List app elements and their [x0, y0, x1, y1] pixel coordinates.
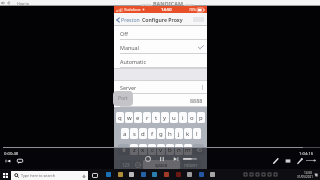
staticText: o	[190, 114, 194, 122]
button[interactable]: Tray icon	[272, 169, 278, 180]
button[interactable]: q	[116, 112, 124, 123]
button[interactable]: How to	[17, 0, 316, 6]
button[interactable]: v	[157, 144, 165, 155]
button[interactable]: Shift	[118, 144, 129, 155]
button[interactable]: Next	[172, 155, 180, 163]
button[interactable]: Reload	[7, 1, 11, 5]
button[interactable]: Switch language	[133, 160, 142, 169]
button[interactable]: Mail	[137, 169, 149, 180]
button[interactable]: n	[175, 144, 183, 155]
button[interactable]: Automatic	[114, 54, 207, 68]
button[interactable]: Tray icon	[248, 169, 254, 180]
staticText: w	[127, 114, 132, 122]
button[interactable]: Tray icon	[266, 169, 272, 180]
button[interactable]: Pause	[158, 155, 166, 163]
button[interactable]: File Explorer	[114, 169, 126, 180]
staticText: Configure Proxy	[142, 16, 183, 23]
staticText: i	[182, 114, 184, 122]
staticText: y	[163, 114, 167, 122]
button[interactable]: b	[166, 144, 174, 155]
button[interactable]: return	[181, 160, 201, 169]
button[interactable]: d	[139, 128, 147, 139]
staticText: Type here to search	[21, 173, 55, 178]
button[interactable]: space	[143, 160, 180, 169]
button[interactable]: Preston	[114, 16, 140, 23]
button[interactable]: Tray icon	[260, 169, 266, 180]
staticText: Automatic	[120, 58, 146, 65]
button[interactable]: Acrobat	[160, 169, 172, 180]
staticText: 0:00:48	[4, 151, 19, 157]
staticText: b	[168, 146, 172, 154]
button[interactable]: App	[172, 169, 184, 180]
button[interactable]: y	[161, 112, 169, 123]
button[interactable]: Notes	[284, 157, 291, 164]
button[interactable]: Microsoft Store	[125, 169, 137, 180]
staticText: p	[199, 114, 203, 122]
button[interactable]: z	[130, 144, 138, 155]
button[interactable]: Microsoft Edge	[102, 169, 114, 180]
button[interactable]: Port	[114, 94, 207, 107]
staticText: j	[178, 130, 180, 138]
staticText: k	[186, 130, 190, 138]
button[interactable]: Skype	[148, 169, 160, 180]
button[interactable]: o	[188, 112, 196, 123]
button[interactable]: e	[134, 112, 142, 123]
button[interactable]: Server	[114, 81, 207, 94]
button[interactable]: a	[121, 128, 129, 139]
button[interactable]: w	[125, 112, 133, 123]
button[interactable]: Tray icon	[242, 169, 248, 180]
staticText: 123	[122, 162, 130, 168]
button[interactable]: Draw	[272, 157, 279, 164]
staticText: Port	[120, 97, 131, 104]
staticText: h	[168, 130, 172, 138]
button[interactable]: s	[130, 128, 138, 139]
button[interactable]: Back	[1, 1, 5, 5]
button[interactable]: Loop	[144, 155, 152, 163]
button[interactable]: x	[139, 144, 147, 155]
button[interactable]: t	[152, 112, 160, 123]
button[interactable]: f	[148, 128, 156, 139]
button[interactable]: i	[179, 112, 187, 123]
button[interactable]: Off	[114, 26, 207, 40]
button[interactable]: Tray icon	[254, 169, 260, 180]
staticText: 14:50	[161, 7, 172, 13]
button[interactable]: App	[195, 169, 207, 180]
staticText: 14:50	[304, 171, 313, 175]
button[interactable]: r	[143, 112, 151, 123]
button[interactable]: Notifications	[313, 172, 319, 178]
staticText: Vodafone	[124, 7, 141, 12]
button[interactable]: c	[148, 144, 156, 155]
button[interactable]: g	[157, 128, 165, 139]
staticText: Port	[118, 95, 128, 102]
staticText: www.	[141, 2, 153, 7]
staticText: x	[141, 146, 145, 154]
button[interactable]: Manual	[114, 40, 207, 54]
button[interactable]: 123	[120, 160, 132, 169]
staticText: s	[133, 130, 136, 138]
staticText: z	[133, 146, 136, 154]
button[interactable]: Settings	[296, 157, 303, 164]
button[interactable]: m	[184, 144, 192, 155]
staticText: .com	[184, 2, 194, 7]
button[interactable]: Task view	[90, 170, 99, 180]
staticText: 1:04:16	[299, 151, 314, 157]
button[interactable]: Volume	[181, 155, 199, 163]
staticText: r	[146, 114, 149, 122]
button[interactable]: App	[183, 169, 195, 180]
button[interactable]: Volume	[306, 157, 316, 164]
button[interactable]: Previous	[4, 157, 11, 164]
button[interactable]: Type here to search	[11, 171, 88, 180]
staticText: v	[159, 146, 163, 154]
button[interactable]: p	[197, 112, 205, 123]
button[interactable]: Start	[1, 170, 10, 180]
button[interactable]: App	[206, 169, 218, 180]
button[interactable]: j	[175, 128, 183, 139]
button[interactable]: Backspace	[193, 144, 204, 155]
button[interactable]: Subtitles	[16, 157, 23, 164]
button[interactable]: u	[170, 112, 178, 123]
staticText: d	[141, 130, 145, 138]
button[interactable]: l	[193, 128, 201, 139]
button[interactable]: h	[166, 128, 174, 139]
button[interactable]: k	[184, 128, 192, 139]
